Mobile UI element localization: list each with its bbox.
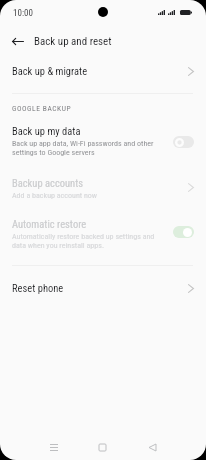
staticText: Reset phone [12,282,64,294]
button[interactable]: Reset phone [0,270,206,306]
button[interactable]: Back up & migrate [0,53,206,89]
button[interactable]: Back [142,437,162,457]
button[interactable]: Backup accounts [0,177,206,200]
staticText: GOOGLE BACKUP [12,104,72,113]
staticText: Backup accounts [12,177,84,189]
button[interactable]: Back up my data [0,125,206,157]
staticText: Back up & migrate [12,65,88,77]
button[interactable]: Toggle on [173,226,194,238]
button[interactable]: Toggle off [173,136,194,148]
staticText: Back up my data [12,125,81,137]
staticText: 10:00 [13,8,33,19]
button[interactable]: Recent apps [44,437,64,457]
button[interactable]: Home [92,437,112,457]
staticText: Add a backup account now [12,191,98,200]
button[interactable]: Automatic restore [0,218,206,250]
staticText: Back up app data, Wi-Fi passwords and ot… [12,139,154,157]
button[interactable]: Back [7,30,29,52]
staticText: Back up and reset [34,35,112,48]
staticText: Automatic restore [12,218,87,230]
staticText: Automatically restore backed up settings… [12,232,155,250]
